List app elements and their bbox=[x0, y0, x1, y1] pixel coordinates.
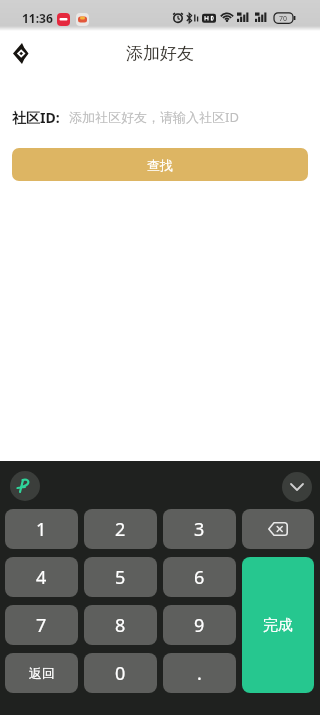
button[interactable] bbox=[282, 472, 312, 502]
button[interactable]: 5 bbox=[84, 557, 157, 597]
button[interactable]: 9 bbox=[163, 605, 236, 645]
button[interactable]: 0 bbox=[84, 653, 157, 693]
staticText: 2 bbox=[115, 517, 126, 542]
staticText: 70 bbox=[279, 14, 288, 24]
staticText: 5 bbox=[115, 565, 126, 590]
button[interactable]: 查找 bbox=[12, 148, 308, 181]
button[interactable] bbox=[10, 471, 40, 501]
staticText: 返回 bbox=[29, 665, 55, 681]
staticText: 添加社区好友，请输入社区ID bbox=[69, 108, 239, 126]
staticText: 社区ID: bbox=[12, 108, 60, 127]
button[interactable]: 返回 bbox=[5, 653, 78, 693]
button[interactable]: 7 bbox=[5, 605, 78, 645]
button[interactable]: 8 bbox=[84, 605, 157, 645]
button[interactable]: 1 bbox=[5, 509, 78, 549]
button[interactable]: 3 bbox=[163, 509, 236, 549]
staticText: 6 bbox=[194, 565, 205, 590]
button[interactable]: 完成 bbox=[242, 557, 314, 693]
button[interactable]: 6 bbox=[163, 557, 236, 597]
staticText: . bbox=[197, 661, 202, 686]
staticText: 查找 bbox=[147, 157, 173, 173]
staticText: 4 bbox=[36, 565, 47, 590]
button[interactable]: . bbox=[163, 653, 236, 693]
button[interactable] bbox=[2, 34, 40, 72]
staticText: 3 bbox=[194, 517, 205, 542]
staticText: 0 bbox=[115, 661, 126, 686]
staticText: 完成 bbox=[263, 616, 293, 635]
button[interactable] bbox=[242, 509, 314, 549]
button[interactable]: 4 bbox=[5, 557, 78, 597]
staticText: 添加好友 bbox=[126, 43, 194, 64]
staticText: 11:36 bbox=[22, 10, 53, 26]
staticText: 8 bbox=[115, 613, 126, 638]
staticText: 1 bbox=[36, 517, 47, 542]
staticText: 7 bbox=[36, 613, 47, 638]
staticText: 9 bbox=[194, 613, 205, 638]
button[interactable]: 2 bbox=[84, 509, 157, 549]
